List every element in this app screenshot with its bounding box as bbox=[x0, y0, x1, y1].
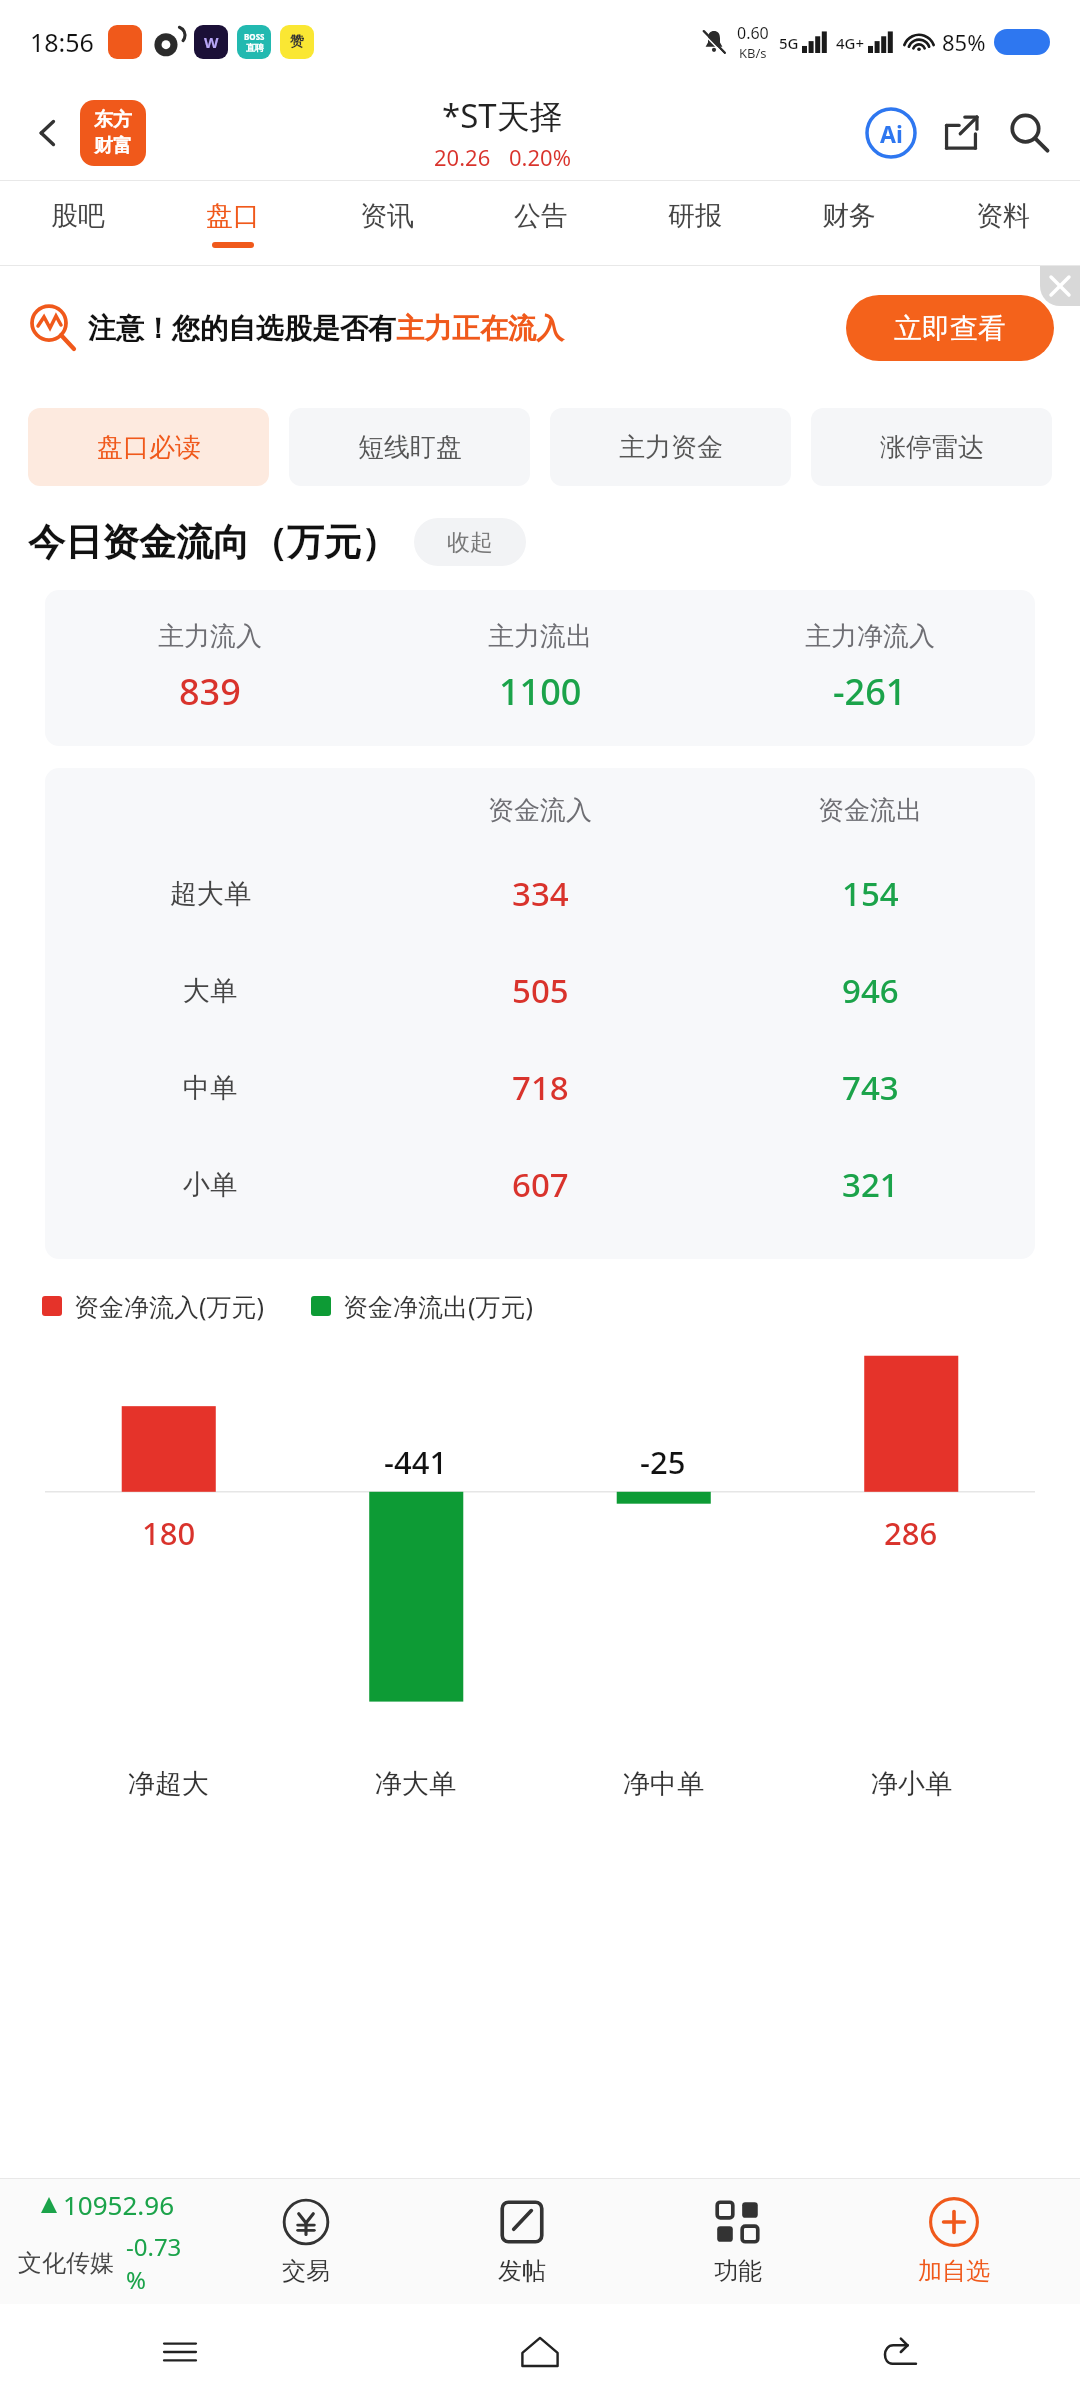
staticText: 1100 bbox=[499, 667, 582, 716]
staticText: 加自选 bbox=[918, 2256, 990, 2286]
staticText: 股吧 bbox=[51, 199, 105, 233]
staticText: 主力净流入 bbox=[805, 620, 935, 653]
button[interactable]: 财务 bbox=[772, 181, 926, 266]
staticText: 334 bbox=[512, 871, 569, 916]
staticText: 大单 bbox=[183, 974, 237, 1008]
staticText: 718 bbox=[512, 1065, 569, 1110]
staticText: 10952.96 bbox=[63, 2187, 175, 2222]
button[interactable]: 盘口 bbox=[155, 181, 310, 266]
staticText: 20.26 bbox=[434, 142, 491, 172]
staticText: -441 bbox=[384, 1441, 448, 1483]
button[interactable]: 公告 bbox=[464, 181, 618, 266]
staticText: 资料 bbox=[976, 199, 1030, 233]
staticText: 743 bbox=[842, 1065, 899, 1110]
staticText: 财富 bbox=[94, 134, 132, 158]
button[interactable]: 短线盯盘 bbox=[289, 408, 530, 486]
button[interactable]: Back bbox=[720, 2304, 1080, 2400]
staticText: 研报 bbox=[668, 199, 722, 233]
staticText: 小单 bbox=[183, 1168, 237, 1202]
staticText: 立即查看 bbox=[894, 311, 1006, 346]
staticText: 主力流出 bbox=[488, 620, 592, 653]
staticText: 18:56 bbox=[30, 25, 94, 59]
button[interactable]: 交易 bbox=[198, 2196, 414, 2286]
button[interactable]: 资讯 bbox=[310, 181, 464, 266]
staticText: 0.20% bbox=[509, 142, 571, 172]
button[interactable]: Close bbox=[1040, 266, 1080, 306]
button[interactable]: 主力资金 bbox=[550, 408, 791, 486]
staticText: 超大单 bbox=[170, 877, 251, 911]
staticText: 净小单 bbox=[871, 1767, 952, 1801]
staticText: 功能 bbox=[714, 2256, 762, 2286]
staticText: 资金流出 bbox=[818, 794, 922, 827]
staticText: *ST天择 bbox=[442, 93, 563, 138]
button[interactable]: 立即查看 bbox=[846, 295, 1054, 361]
staticText: 净超大 bbox=[128, 1767, 209, 1801]
staticText: 净中单 bbox=[623, 1767, 704, 1801]
staticText: 发帖 bbox=[498, 2256, 546, 2286]
button[interactable]: 研报 bbox=[618, 181, 772, 266]
staticText: 5G bbox=[779, 33, 799, 53]
button[interactable]: Back bbox=[22, 107, 74, 159]
staticText: 286 bbox=[884, 1512, 938, 1554]
staticText: 4G+ bbox=[836, 33, 865, 53]
button[interactable]: 功能 bbox=[630, 2196, 846, 2286]
staticText: 中单 bbox=[183, 1071, 237, 1105]
button[interactable]: AI bbox=[860, 102, 922, 164]
staticText: 946 bbox=[842, 968, 899, 1013]
staticText: 主力流入 bbox=[158, 620, 262, 653]
button[interactable]: 股吧 bbox=[0, 181, 155, 266]
button[interactable]: Share bbox=[932, 104, 990, 162]
staticText: 主力正在流入 bbox=[396, 311, 564, 346]
button[interactable]: 盘口必读 bbox=[28, 408, 269, 486]
button[interactable]: 资料 bbox=[926, 181, 1080, 266]
staticText: 短线盯盘 bbox=[358, 431, 462, 464]
staticText: 85% bbox=[942, 27, 986, 57]
staticText: 注意！您的自选股是否有 bbox=[88, 311, 396, 346]
staticText: KB/s bbox=[739, 44, 767, 62]
staticText: 东方 bbox=[94, 108, 132, 132]
staticText: 0.60 bbox=[737, 22, 769, 44]
staticText: 180 bbox=[142, 1512, 196, 1554]
staticText: 321 bbox=[842, 1162, 899, 1207]
staticText: 盘口 bbox=[206, 199, 260, 233]
button[interactable]: Search bbox=[1000, 104, 1058, 162]
staticText: 主力资金 bbox=[619, 431, 723, 464]
staticText: 资讯 bbox=[360, 199, 414, 233]
staticText: -261 bbox=[833, 667, 907, 716]
staticText: 直聘 bbox=[246, 42, 264, 53]
staticText: 公告 bbox=[514, 199, 568, 233]
staticText: 今日资金流向（万元） bbox=[28, 519, 398, 566]
staticText: 505 bbox=[512, 968, 569, 1013]
button[interactable]: 收起 bbox=[414, 518, 526, 566]
button[interactable]: Home bbox=[360, 2304, 720, 2400]
button[interactable]: 涨停雷达 bbox=[811, 408, 1052, 486]
button[interactable]: Recents bbox=[0, 2304, 360, 2400]
staticText: 文化传媒 bbox=[18, 2248, 114, 2278]
staticText: 607 bbox=[512, 1162, 569, 1207]
button[interactable]: 10952.96 bbox=[18, 2187, 198, 2296]
staticText: 交易 bbox=[282, 2256, 330, 2286]
staticText: 资金净流出(万元) bbox=[343, 1289, 534, 1323]
staticText: 净大单 bbox=[375, 1767, 456, 1801]
staticText: 资金净流入(万元) bbox=[74, 1289, 265, 1323]
staticText: 资金流入 bbox=[488, 794, 592, 827]
button[interactable]: 加自选 bbox=[846, 2196, 1062, 2286]
staticText: 财务 bbox=[822, 199, 876, 233]
staticText: W bbox=[204, 32, 219, 52]
staticText: 收起 bbox=[447, 528, 493, 557]
button[interactable]: 东方 bbox=[80, 100, 146, 166]
staticText: Ai bbox=[880, 118, 903, 149]
staticText: BOSS bbox=[244, 31, 265, 42]
staticText: 154 bbox=[842, 871, 899, 916]
button[interactable]: 发帖 bbox=[414, 2196, 630, 2286]
staticText: 839 bbox=[179, 667, 241, 716]
staticText: -0.73% bbox=[126, 2230, 198, 2296]
staticText: 盘口必读 bbox=[97, 431, 201, 464]
staticText: 赞 bbox=[290, 33, 304, 51]
staticText: -25 bbox=[640, 1441, 686, 1483]
staticText: 涨停雷达 bbox=[880, 431, 984, 464]
